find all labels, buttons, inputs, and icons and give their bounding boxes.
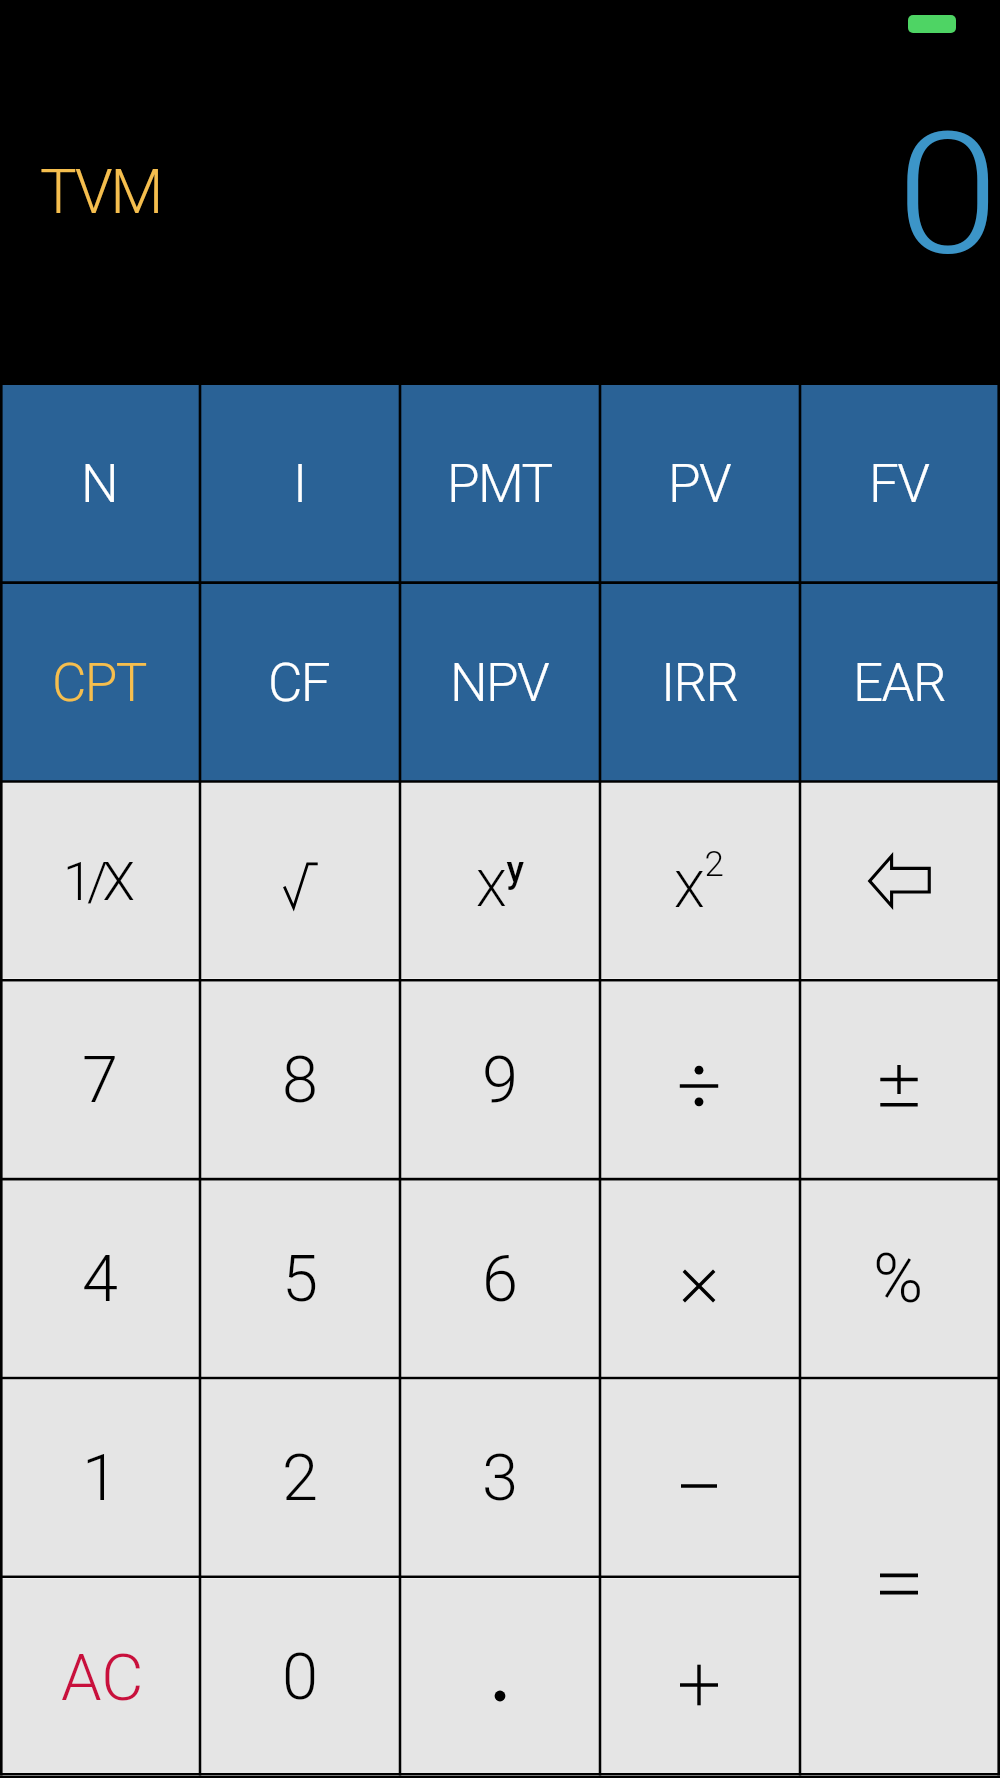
staticText: PMT [447, 453, 552, 515]
button[interactable]: % [800, 1179, 1000, 1378]
button[interactable]: Divide [600, 980, 800, 1179]
button[interactable]: EAR [800, 583, 1000, 782]
button[interactable]: Plus [600, 1577, 800, 1776]
button[interactable]: 8 [200, 980, 400, 1179]
button[interactable]: PMT [400, 384, 600, 583]
button[interactable]: Backspace [800, 781, 1000, 980]
button[interactable]: Equals [800, 1378, 1000, 1776]
button[interactable]: I [200, 384, 400, 583]
staticText: PV [668, 453, 731, 515]
button[interactable]: 2 [200, 1378, 400, 1577]
staticText: 7 [82, 1042, 119, 1118]
button[interactable]: Decimal point [400, 1577, 600, 1776]
button[interactable]: CPT [0, 583, 200, 782]
staticText: 0 [282, 1639, 319, 1715]
staticText: % [873, 1239, 924, 1319]
staticText: IRR [661, 652, 738, 714]
button[interactable]: 1 [0, 1378, 200, 1577]
staticText: CF [268, 652, 330, 714]
button[interactable]: Xy [400, 781, 600, 980]
staticText: 5 [282, 1241, 319, 1317]
button[interactable]: Multiply [600, 1179, 800, 1378]
button[interactable]: 1/X [0, 781, 200, 980]
staticText: 1 [82, 1440, 119, 1516]
staticText: FV [869, 453, 929, 515]
button[interactable]: NPV [400, 583, 600, 782]
staticText: EAR [853, 652, 946, 714]
button[interactable]: 9 [400, 980, 600, 1179]
staticText: N [81, 453, 119, 515]
button[interactable]: 6 [400, 1179, 600, 1378]
button[interactable]: 3 [400, 1378, 600, 1577]
button[interactable]: PV [600, 384, 800, 583]
staticText: 4 [82, 1241, 119, 1317]
button[interactable]: IRR [600, 583, 800, 782]
staticText: 3 [482, 1440, 519, 1516]
staticText: Xy [476, 849, 525, 918]
button[interactable]: 5 [200, 1179, 400, 1378]
button[interactable]: N [0, 384, 200, 583]
staticText: CPT [52, 652, 146, 714]
staticText: X2 [674, 844, 725, 920]
button[interactable]: 0 [200, 1577, 400, 1776]
button[interactable]: Square root [200, 781, 400, 980]
button[interactable]: Minus [600, 1378, 800, 1577]
staticText: NPV [450, 652, 549, 714]
button[interactable]: X2 [600, 781, 800, 980]
staticText: AC [61, 1640, 144, 1716]
button[interactable]: FV [800, 384, 1000, 583]
button[interactable]: AC [0, 1577, 200, 1776]
staticText: 1/X [63, 851, 130, 913]
button[interactable]: CF [200, 583, 400, 782]
staticText: 9 [482, 1042, 519, 1118]
staticText: I [293, 453, 308, 515]
staticText: 2 [282, 1440, 319, 1516]
staticText: 8 [282, 1042, 319, 1118]
staticText: 6 [482, 1241, 519, 1317]
staticText: 0 [897, 96, 1000, 293]
button[interactable]: Plus minus [800, 980, 1000, 1179]
staticText: TVM [40, 156, 161, 228]
button[interactable]: 7 [0, 980, 200, 1179]
button[interactable]: 4 [0, 1179, 200, 1378]
